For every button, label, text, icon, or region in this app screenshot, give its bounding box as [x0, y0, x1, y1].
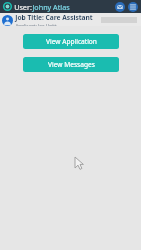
button[interactable]: View Application — [23, 34, 119, 49]
button[interactable]: Messages — [114, 1, 125, 12]
staticText: Applicant: Joe Unitt — [15, 23, 57, 26]
staticText: User: — [14, 2, 32, 12]
staticText: Job Title: Care Assistant — [15, 13, 93, 22]
button[interactable]: Home logo — [2, 1, 13, 12]
staticText: View Messages — [48, 60, 95, 69]
button[interactable]: View Messages — [23, 57, 119, 72]
staticText: Johny Atlas — [32, 2, 70, 12]
button[interactable]: Menu — [127, 1, 138, 12]
staticText: View Application — [46, 37, 97, 46]
